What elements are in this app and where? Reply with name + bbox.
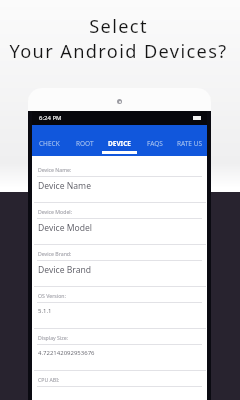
button[interactable]: Device Model: bbox=[32, 203, 207, 245]
staticText: Device Model bbox=[38, 222, 93, 234]
button[interactable]: FAQS bbox=[137, 125, 172, 156]
staticText: Device Brand bbox=[38, 264, 92, 276]
staticText: Device Brand: bbox=[38, 250, 72, 257]
staticText: Device Name: bbox=[38, 166, 72, 173]
staticText: Display Size: bbox=[38, 334, 68, 341]
staticText: 6:24 PM bbox=[39, 114, 62, 122]
button[interactable]: RATE US bbox=[172, 125, 207, 156]
staticText: 5.1.1 bbox=[38, 307, 52, 315]
staticText: Device Name bbox=[38, 180, 91, 192]
button[interactable]: OS Version: bbox=[32, 287, 207, 329]
staticText: Your Android Devices? bbox=[9, 39, 228, 64]
staticText: Device Model: bbox=[38, 208, 73, 215]
staticText: RATE US bbox=[177, 139, 202, 148]
button[interactable]: Device Brand: bbox=[32, 245, 207, 287]
button[interactable]: Display Size: bbox=[32, 329, 207, 371]
staticText: CPU ABI: bbox=[38, 376, 60, 383]
button[interactable]: CPU ABI: bbox=[32, 371, 207, 397]
staticText: Select bbox=[89, 14, 148, 39]
staticText: ROOT bbox=[76, 139, 94, 148]
staticText: 4.722142092953676 bbox=[38, 349, 95, 357]
button[interactable]: DEVICE bbox=[102, 125, 137, 156]
button[interactable]: Device Name: bbox=[32, 161, 207, 203]
staticText: FAQS bbox=[147, 139, 163, 148]
staticText: OS Version: bbox=[38, 292, 66, 299]
staticText: DEVICE bbox=[108, 139, 131, 148]
button[interactable]: ROOT bbox=[67, 125, 102, 156]
button[interactable]: CHECK bbox=[32, 125, 67, 156]
staticText: CHECK bbox=[39, 139, 60, 148]
